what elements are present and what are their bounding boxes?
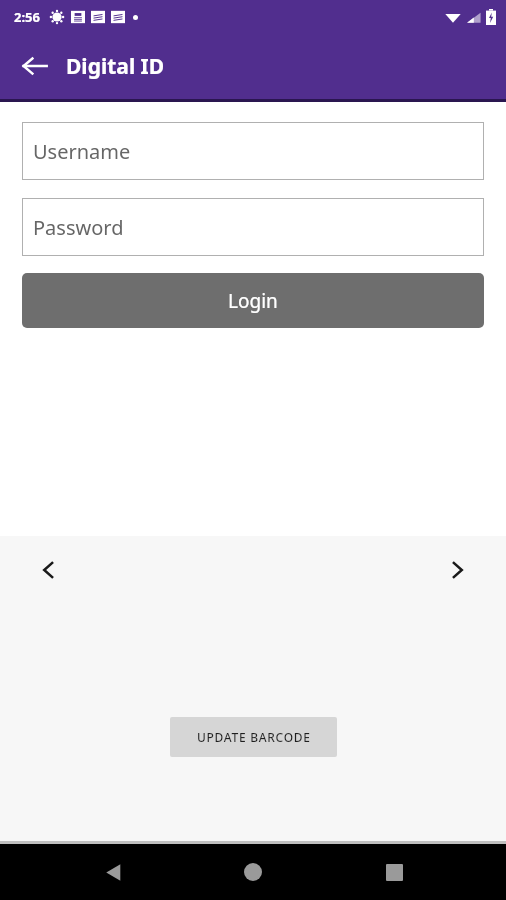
button[interactable]: Home [225, 844, 281, 900]
staticText: Username [33, 138, 131, 165]
staticText: Digital ID [66, 52, 165, 81]
button[interactable]: Back [12, 43, 58, 89]
staticText: UPDATE BARCODE [197, 729, 311, 745]
button[interactable]: Back [85, 844, 141, 900]
staticText: Login [228, 288, 278, 314]
button[interactable]: Login [22, 273, 484, 328]
button[interactable]: UPDATE BARCODE [170, 717, 337, 757]
staticText: 2:56 [14, 8, 40, 26]
button[interactable]: Recent apps [366, 844, 422, 900]
button[interactable]: Username [22, 122, 484, 180]
staticText: Password [33, 214, 124, 241]
button[interactable]: Password [22, 198, 484, 256]
button[interactable]: Next [432, 545, 482, 595]
button[interactable]: Previous [24, 545, 74, 595]
